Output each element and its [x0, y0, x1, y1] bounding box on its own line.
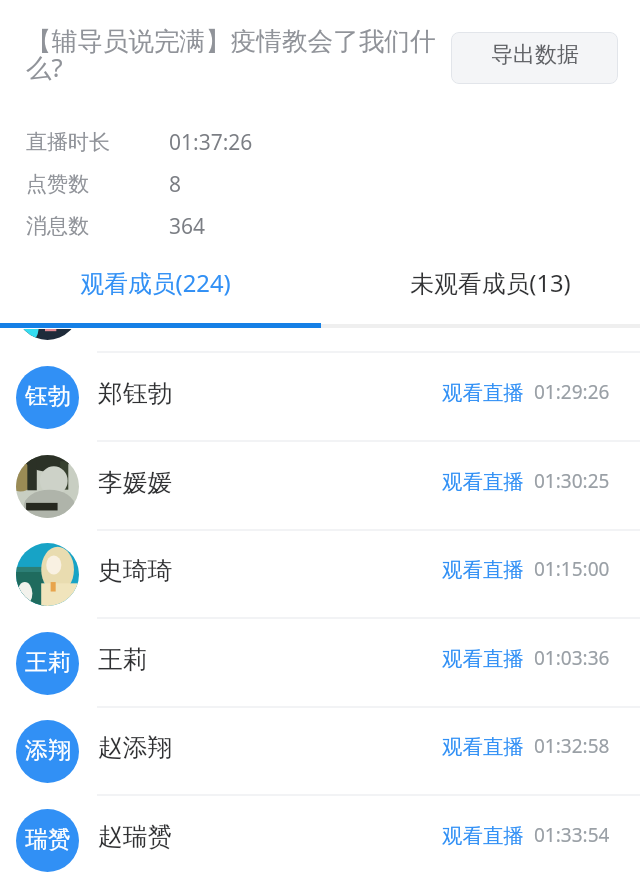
staticText: 01:32:58 [534, 733, 610, 759]
staticText: 直播时长 [26, 129, 110, 155]
staticText: 观看直播 [442, 380, 524, 406]
staticText: 钰勃 [25, 382, 71, 411]
button[interactable]: 未观看成员(13) [320, 247, 640, 329]
staticText: 01:29:26 [534, 379, 610, 405]
staticText: 导出数据 [491, 41, 579, 69]
staticText: 观看直播 [442, 734, 524, 760]
button[interactable]: 观看直播 [442, 828, 524, 854]
button[interactable]: 王莉 [0, 619, 640, 708]
staticText: 观看直播 [442, 646, 524, 672]
button[interactable]: 观看成员(224) [0, 247, 320, 329]
staticText: 瑞赟 [25, 825, 71, 854]
staticText: 李媛媛 [98, 467, 173, 498]
button[interactable]: 李媛媛 [0, 442, 640, 531]
button[interactable]: 瑞赟 [0, 796, 640, 880]
staticText: 史琦琦 [98, 555, 173, 586]
staticText: 01:37:26 [169, 128, 253, 157]
staticText: 王莉 [25, 648, 71, 677]
staticText: 01:33:54 [534, 822, 610, 848]
button[interactable]: 观看直播 [442, 651, 524, 677]
staticText: 【辅导员说完满】疫情教会了我们什么? [26, 25, 441, 85]
staticText: 点赞数 [26, 171, 89, 197]
button[interactable]: 观看直播 [442, 739, 524, 765]
button[interactable]: 观看直播 [442, 385, 524, 411]
staticText: 8 [169, 170, 182, 199]
button[interactable]: 史琦琦 [0, 530, 640, 619]
staticText: 01:15:00 [534, 556, 610, 582]
staticText: 赵瑞赟 [98, 821, 173, 852]
button[interactable]: 导出数据 [451, 32, 618, 84]
staticText: 添翔 [25, 736, 71, 765]
staticText: 观看直播 [442, 469, 524, 495]
staticText: 观看直播 [442, 557, 524, 583]
staticText: 观看成员(224) [80, 267, 231, 300]
staticText: 观看直播 [442, 823, 524, 849]
staticText: 赵添翔 [98, 732, 173, 763]
staticText: 01:03:36 [534, 645, 610, 671]
staticText: 王莉 [98, 644, 148, 675]
staticText: 郑钰勃 [98, 378, 173, 409]
button[interactable]: 观看直播 [442, 562, 524, 588]
button[interactable]: 钰勃 [0, 353, 640, 442]
button[interactable]: 观看直播 [442, 474, 524, 500]
staticText: 01:30:25 [534, 468, 610, 494]
staticText: 消息数 [26, 213, 89, 239]
staticText: 364 [169, 212, 206, 241]
button[interactable]: 添翔 [0, 707, 640, 796]
staticText: 未观看成员(13) [410, 267, 571, 300]
button[interactable]: 刘某某 [0, 329, 640, 353]
